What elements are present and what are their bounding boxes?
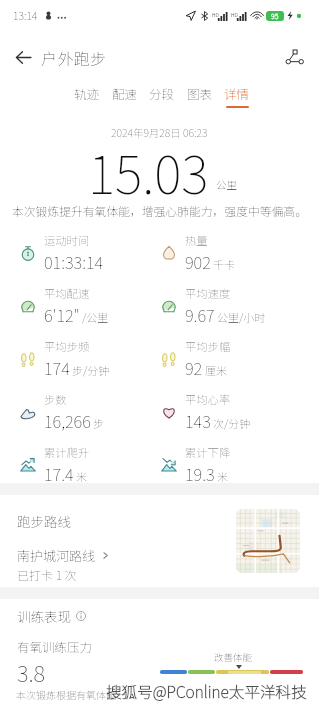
button[interactable]: Share <box>278 41 310 73</box>
staticText: 19.3 <box>185 462 215 486</box>
staticText: 南护城河路线 <box>17 546 96 565</box>
staticText: 15.03 <box>88 134 209 209</box>
staticText: 训练表现 <box>17 606 71 626</box>
staticText: 公里 <box>216 177 237 192</box>
staticText: 143 <box>185 409 211 433</box>
staticText: 厘米 <box>205 362 227 378</box>
button[interactable]: 分段 <box>149 84 175 102</box>
staticText: 平均步频 <box>44 338 90 354</box>
staticText: 13:14 <box>13 8 38 23</box>
staticText: HD <box>231 11 238 18</box>
staticText: 搜狐号@PConline太平洋科技 <box>106 680 307 703</box>
staticText: 95 <box>271 11 279 21</box>
staticText: 3.8 <box>17 656 46 688</box>
staticText: 分段 <box>149 84 175 102</box>
staticText: 改善体能 <box>214 650 253 664</box>
staticText: 米 <box>217 468 228 484</box>
staticText: 跑步路线 <box>17 511 71 531</box>
staticText: 16,266 <box>44 409 91 433</box>
staticText: 平均速度 <box>185 285 231 301</box>
staticText: 9.67 <box>185 303 215 327</box>
staticText: 平均配速 <box>44 285 90 301</box>
staticText: 已打卡 1 次 <box>17 566 77 583</box>
staticText: 配速 <box>112 84 138 102</box>
staticText: 累计爬升 <box>44 444 90 460</box>
button[interactable]: 轨迹 <box>74 84 100 102</box>
staticText: 运动时间 <box>44 232 90 248</box>
staticText: HD <box>212 11 219 18</box>
staticText: 公里/小时 <box>217 309 266 325</box>
staticText: 6'12" <box>44 303 80 327</box>
button[interactable] <box>0 495 319 587</box>
staticText: 步数 <box>44 391 67 407</box>
button[interactable]: 图表 <box>187 84 213 102</box>
staticText: 热量 <box>185 232 208 248</box>
button[interactable]: 详情 <box>224 84 250 108</box>
staticText: 步 <box>93 415 104 431</box>
other: Info <box>76 611 86 621</box>
staticText: 户外跑步 <box>41 46 107 69</box>
staticText: 902 <box>185 250 211 274</box>
staticText: 2024年9月28日 06:23 <box>111 125 208 140</box>
staticText: 图表 <box>187 84 213 102</box>
button[interactable]: Back <box>8 42 38 72</box>
staticText: 步/分钟 <box>72 362 110 378</box>
staticText: 次/分钟 <box>213 415 251 431</box>
staticText: 累计下降 <box>185 444 231 460</box>
staticText: 01:33:14 <box>44 250 104 274</box>
staticText: 92 <box>185 356 203 380</box>
staticText: 千卡 <box>213 256 235 272</box>
staticText: 轨迹 <box>74 84 100 102</box>
staticText: /公里 <box>82 309 109 325</box>
button[interactable]: 训练表现 <box>17 606 86 626</box>
staticText: 有氧训练压力 <box>17 637 93 655</box>
staticText: 平均心率 <box>185 391 231 407</box>
staticText: 174 <box>44 356 70 380</box>
staticText: 本次锻炼提升有氧体能，增强心肺能力，强度中等偏高。 <box>12 202 307 219</box>
button[interactable]: 配速 <box>112 84 138 102</box>
staticText: 17.4 <box>44 462 74 486</box>
staticText: 平均步幅 <box>185 338 231 354</box>
staticText: 米 <box>76 468 87 484</box>
staticText: 详情 <box>224 84 250 102</box>
staticText: 本次锻炼根据有氧体能… <box>16 687 126 701</box>
